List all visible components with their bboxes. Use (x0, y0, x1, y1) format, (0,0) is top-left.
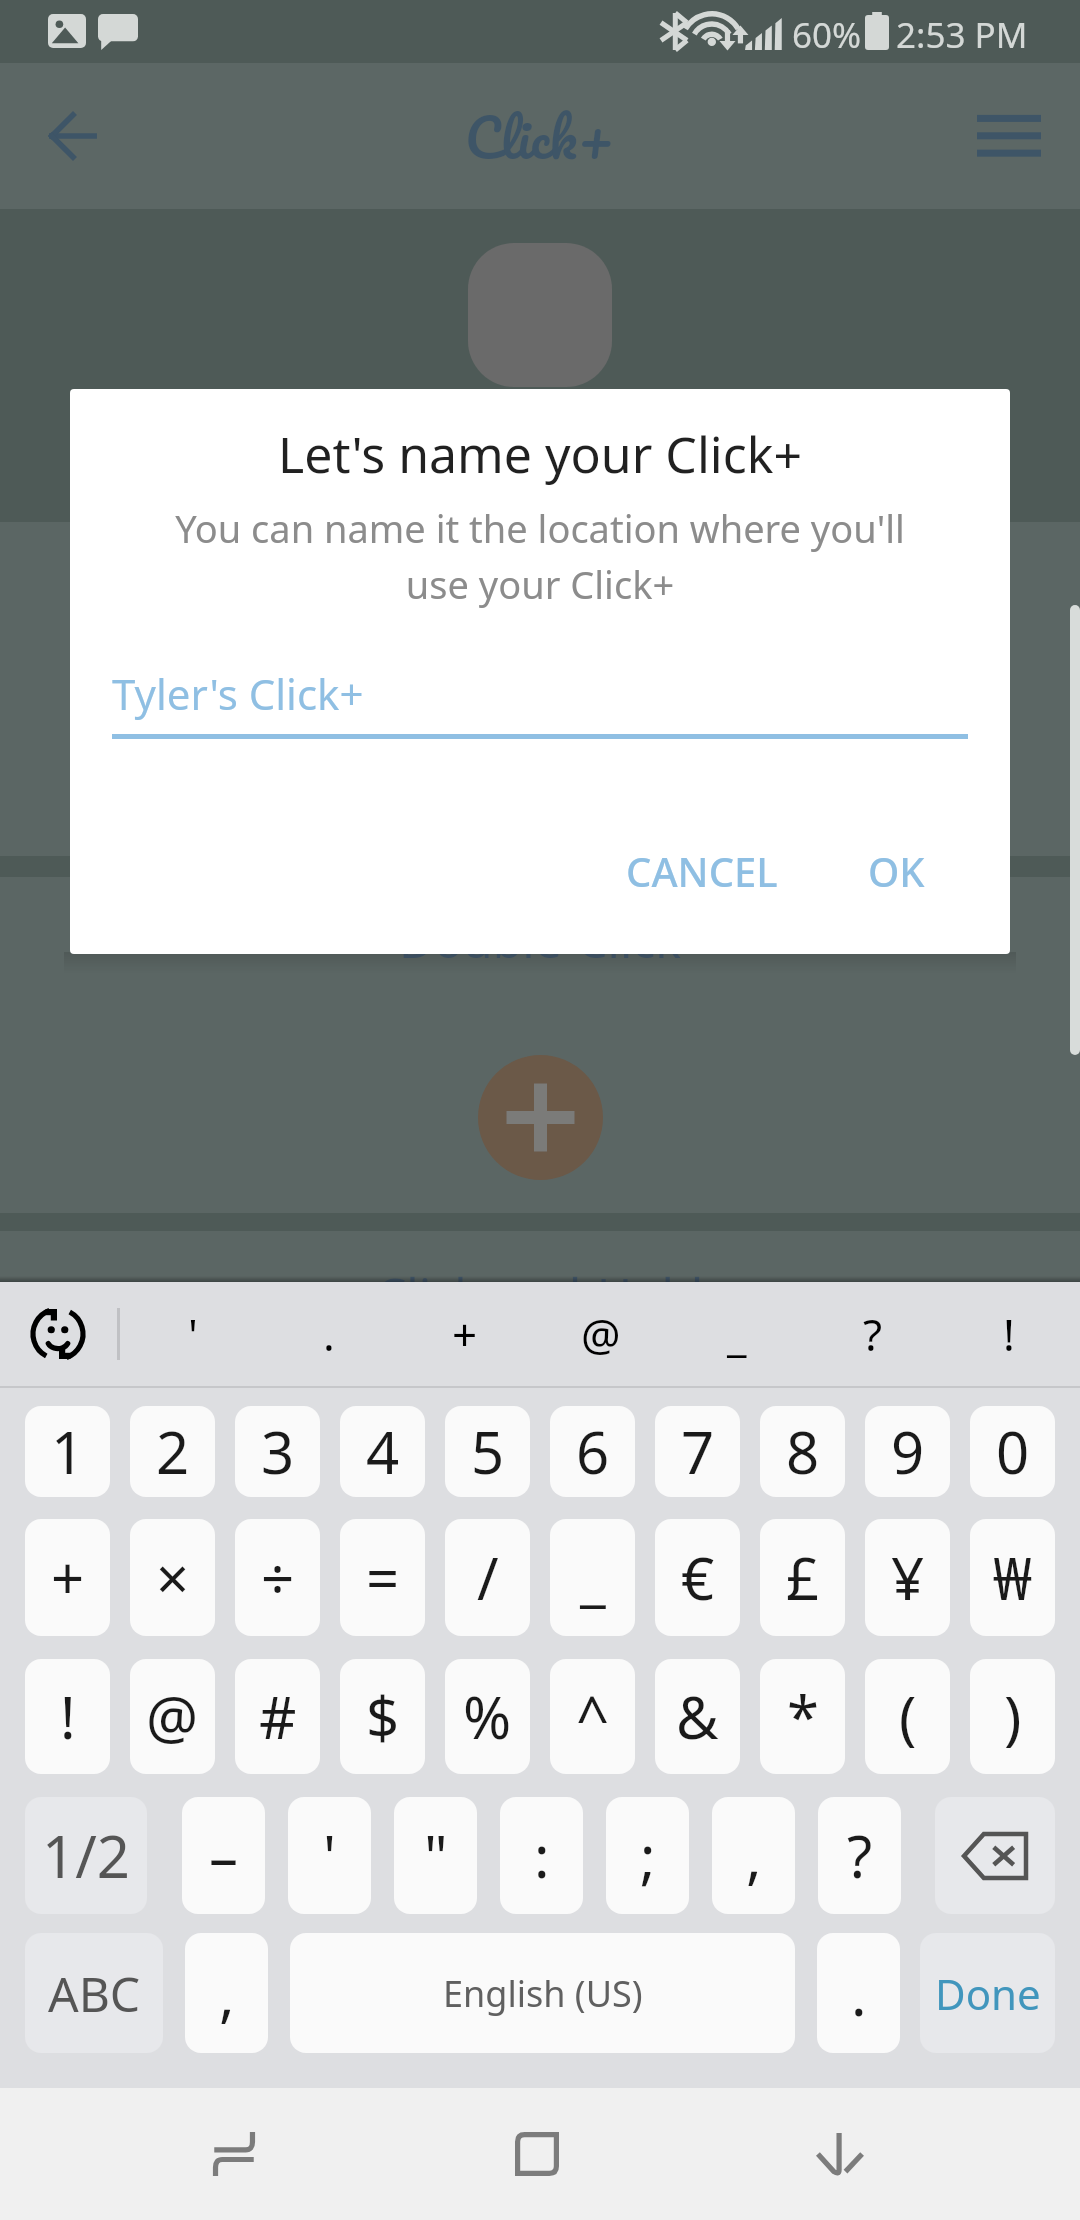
button[interactable]: 2 (130, 1406, 215, 1497)
button[interactable]: Menu (964, 91, 1054, 181)
staticText: 8 (786, 1412, 820, 1491)
button[interactable]: OK (846, 828, 947, 914)
button[interactable]: £ (760, 1519, 845, 1636)
staticText: @ (146, 1677, 199, 1756)
staticText: 4 (366, 1412, 400, 1491)
staticText: ABC (48, 1961, 141, 2026)
button[interactable]: @ (533, 1282, 669, 1386)
staticText: 9 (891, 1412, 925, 1491)
button[interactable]: 7 (655, 1406, 740, 1497)
button[interactable]: : (500, 1797, 583, 1914)
staticText: ? (847, 1816, 873, 1895)
button[interactable]: @ (130, 1659, 215, 1774)
button[interactable]: CANCEL (604, 828, 800, 914)
staticText: € (681, 1538, 715, 1617)
button[interactable]: ) (970, 1659, 1055, 1774)
staticText: CANCEL (626, 844, 778, 898)
button[interactable]: _ (669, 1282, 805, 1386)
staticText: 1/2 (42, 1816, 130, 1895)
button[interactable]: Backspace (935, 1797, 1055, 1914)
staticText: , (219, 1954, 235, 2033)
staticText: × (156, 1538, 190, 1617)
staticText: You can name it the location where you'l… (122, 502, 958, 610)
button[interactable]: 8 (760, 1406, 845, 1497)
button[interactable]: * (760, 1659, 845, 1774)
button[interactable]: 5 (445, 1406, 530, 1497)
button[interactable]: – (182, 1797, 265, 1914)
button[interactable]: Hide keyboard (730, 2088, 950, 2220)
button[interactable]: Home (427, 2088, 647, 2220)
button[interactable]: ' (125, 1282, 261, 1386)
button[interactable]: ? (805, 1282, 941, 1386)
button[interactable]: Recents (124, 2088, 344, 2220)
staticText: ^ (576, 1677, 610, 1756)
staticText: # (259, 1677, 297, 1756)
staticText: / (477, 1538, 499, 1617)
staticText: Double-Click (399, 907, 681, 972)
staticText: . (323, 1304, 335, 1364)
staticText: % (463, 1677, 512, 1756)
button[interactable]: ( (865, 1659, 950, 1774)
staticText: * (787, 1677, 819, 1756)
button[interactable]: 1/2 (25, 1797, 147, 1914)
staticText: ' (323, 1816, 337, 1895)
button[interactable]: × (130, 1519, 215, 1636)
staticText: , (746, 1816, 762, 1895)
staticText: + (452, 1304, 478, 1364)
staticText: = (366, 1538, 400, 1617)
button[interactable]: Done (920, 1933, 1055, 2053)
staticText: 7 (681, 1412, 715, 1491)
button[interactable]: = (340, 1519, 425, 1636)
button[interactable]: 3 (235, 1406, 320, 1497)
button[interactable]: ! (941, 1282, 1077, 1386)
button[interactable]: ₩ (970, 1519, 1055, 1636)
button[interactable]: + (397, 1282, 533, 1386)
button[interactable]: 0 (970, 1406, 1055, 1497)
button[interactable]: English (US) (290, 1933, 795, 2053)
button[interactable]: # (235, 1659, 320, 1774)
button[interactable]: ÷ (235, 1519, 320, 1636)
staticText: ! (60, 1677, 76, 1756)
button[interactable]: . (261, 1282, 397, 1386)
button[interactable]: " (394, 1797, 477, 1914)
button[interactable]: Back (28, 91, 118, 181)
staticText: @ (581, 1304, 621, 1364)
staticText: ? (863, 1304, 883, 1364)
button[interactable]: Emoji (0, 1282, 116, 1386)
staticText: ; (640, 1816, 656, 1895)
staticText: ₩ (993, 1538, 1032, 1617)
button[interactable]: + (25, 1519, 110, 1636)
button[interactable]: / (445, 1519, 530, 1636)
button[interactable]: 4 (340, 1406, 425, 1497)
staticText: ¥ (891, 1538, 925, 1617)
staticText: 1 (51, 1412, 85, 1491)
staticText: ( (899, 1677, 917, 1756)
button[interactable]: ' (288, 1797, 371, 1914)
button[interactable]: & (655, 1659, 740, 1774)
button[interactable]: ; (606, 1797, 689, 1914)
staticText: 6 (576, 1412, 610, 1491)
button[interactable]: 1 (25, 1406, 110, 1497)
staticText: . (851, 1954, 867, 2033)
button[interactable]: ^ (550, 1659, 635, 1774)
button[interactable]: 6 (550, 1406, 635, 1497)
staticText: ' (188, 1304, 198, 1364)
button[interactable]: , (712, 1797, 795, 1914)
button[interactable]: . (817, 1933, 900, 2053)
button[interactable]: $ (340, 1659, 425, 1774)
button[interactable]: , (185, 1933, 268, 2053)
button[interactable]: ? (818, 1797, 901, 1914)
button[interactable]: ! (25, 1659, 110, 1774)
button[interactable]: _ (550, 1519, 635, 1636)
button[interactable]: % (445, 1659, 530, 1774)
staticText: OK (868, 844, 925, 898)
staticText: + (51, 1538, 85, 1617)
staticText: ÷ (261, 1538, 295, 1617)
button[interactable]: ABC (25, 1933, 163, 2053)
button[interactable]: ¥ (865, 1519, 950, 1636)
button[interactable]: 9 (865, 1406, 950, 1497)
button[interactable]: € (655, 1519, 740, 1636)
staticText: 60% (792, 11, 862, 59)
staticText: 2:53 PM (896, 11, 1028, 59)
staticText: Let's name your Click+ (70, 420, 1010, 488)
